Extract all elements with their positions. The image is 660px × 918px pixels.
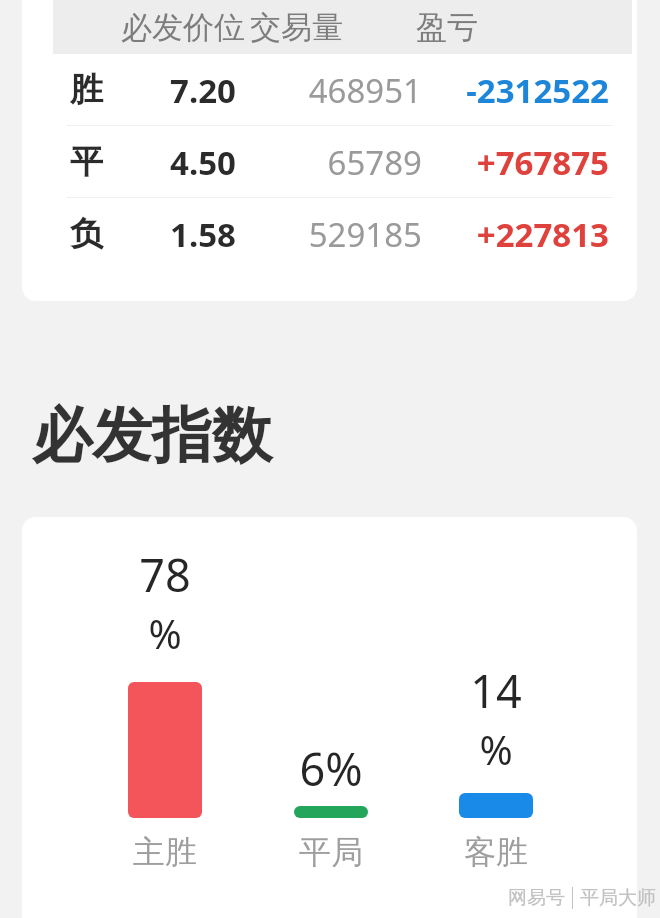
- button[interactable]: 主胜: [95, 832, 235, 872]
- staticText: 必发价位: [121, 8, 245, 47]
- staticText: 78: [105, 544, 225, 605]
- staticText: 6%: [271, 738, 391, 799]
- button[interactable]: 平局: [261, 832, 401, 872]
- staticText: 7.20: [103, 68, 236, 113]
- staticText: 平: [70, 141, 103, 183]
- staticText: +227813: [422, 212, 609, 257]
- staticText: +767875: [422, 140, 609, 185]
- button[interactable]: 负: [22, 198, 637, 270]
- button[interactable]: 胜: [22, 54, 637, 126]
- staticText: 平局: [261, 832, 401, 872]
- staticText: 14: [436, 660, 556, 721]
- staticText: %: [436, 722, 556, 776]
- staticText: 平局大师: [580, 886, 656, 910]
- staticText: 4.50: [103, 140, 236, 185]
- staticText: 客胜: [426, 832, 566, 872]
- staticText: 网易号: [508, 886, 565, 910]
- staticText: 胜: [70, 69, 103, 111]
- staticText: 529185: [236, 212, 422, 257]
- staticText: 盈亏: [416, 8, 478, 47]
- staticText: 主胜: [95, 832, 235, 872]
- other: 网易号 平局大师: [508, 886, 656, 910]
- staticText: 负: [70, 213, 103, 255]
- staticText: 交易量: [250, 8, 343, 47]
- staticText: 必发指数: [32, 398, 272, 474]
- button[interactable]: 平: [22, 126, 637, 198]
- staticText: 468951: [236, 68, 422, 113]
- staticText: -2312522: [422, 68, 609, 113]
- staticText: %: [105, 606, 225, 660]
- staticText: 65789: [236, 140, 422, 185]
- button[interactable]: 客胜: [426, 832, 566, 872]
- staticText: 1.58: [103, 212, 236, 257]
